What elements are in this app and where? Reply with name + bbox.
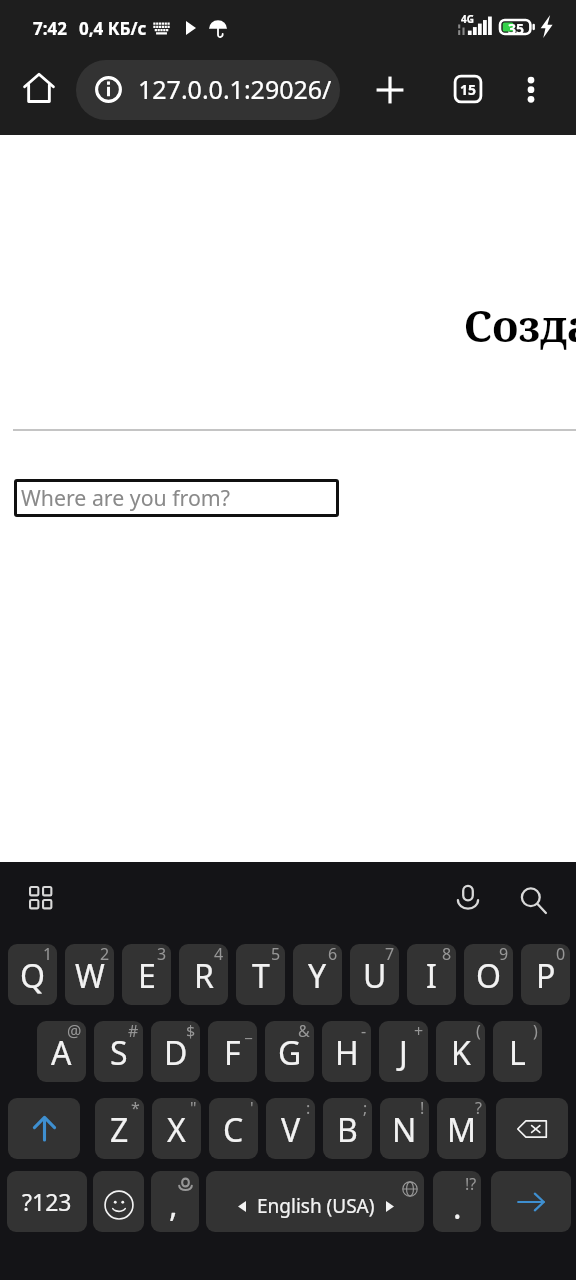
button[interactable]: V xyxy=(266,1098,315,1159)
staticText: 3 xyxy=(157,944,167,965)
button[interactable]: S xyxy=(94,1021,143,1082)
staticText: 4 xyxy=(214,944,224,965)
button[interactable]: Shift xyxy=(8,1098,80,1159)
staticText: O xyxy=(476,954,501,998)
staticText: F xyxy=(224,1031,241,1075)
staticText: E xyxy=(138,954,156,998)
button[interactable]: P xyxy=(521,944,570,1005)
staticText: A xyxy=(51,1031,72,1075)
staticText: ? xyxy=(475,1098,482,1119)
button[interactable]: Y xyxy=(293,944,342,1005)
button[interactable]: New tab xyxy=(362,62,418,118)
staticText: N xyxy=(392,1108,417,1152)
staticText: : xyxy=(306,1098,311,1119)
staticText: ! xyxy=(420,1098,425,1119)
staticText: + xyxy=(414,1021,424,1042)
staticText: V xyxy=(281,1108,301,1152)
button[interactable]: A xyxy=(37,1021,86,1082)
button[interactable]: , xyxy=(151,1171,199,1232)
staticText: 4G xyxy=(461,12,474,26)
staticText: S xyxy=(110,1031,128,1075)
button[interactable]: 127.0.0.1:29026/ xyxy=(76,60,340,120)
button[interactable]: Voice input xyxy=(444,875,492,923)
button[interactable]: English (USA) xyxy=(206,1171,424,1232)
staticText: P xyxy=(536,954,556,998)
staticText: & xyxy=(298,1021,310,1042)
staticText: 5 xyxy=(271,944,281,965)
button[interactable]: Z xyxy=(95,1098,144,1159)
button[interactable]: K xyxy=(436,1021,485,1082)
staticText: !? xyxy=(465,1173,477,1195)
staticText: Y xyxy=(308,954,327,998)
button[interactable]: Backspace xyxy=(496,1098,568,1159)
staticText: 7 xyxy=(385,944,395,965)
staticText: X xyxy=(167,1108,186,1152)
staticText: C xyxy=(223,1108,244,1152)
staticText: English (USA) xyxy=(257,1193,375,1219)
staticText: _ xyxy=(245,1021,253,1042)
button[interactable]: B xyxy=(323,1098,372,1159)
button[interactable]: N xyxy=(380,1098,429,1159)
button[interactable]: F xyxy=(208,1021,257,1082)
button[interactable]: L xyxy=(493,1021,542,1082)
staticText: B xyxy=(337,1108,358,1152)
button[interactable]: W xyxy=(65,944,114,1005)
button[interactable]: R xyxy=(179,944,228,1005)
staticText: - xyxy=(361,1021,367,1042)
button[interactable]: D xyxy=(151,1021,200,1082)
button[interactable]: Enter xyxy=(491,1171,571,1232)
staticText: 127.0.0.1:29026/ xyxy=(138,72,332,106)
button[interactable]: More options xyxy=(503,62,559,118)
button[interactable]: I xyxy=(407,944,456,1005)
staticText: K xyxy=(451,1031,471,1075)
staticText: 0,4 КБ/с xyxy=(79,17,147,40)
staticText: Созда xyxy=(464,296,576,355)
button[interactable]: Home xyxy=(10,59,67,116)
button[interactable]: H xyxy=(322,1021,371,1082)
button[interactable]: M xyxy=(437,1098,486,1159)
staticText: " xyxy=(190,1098,197,1119)
staticText: 9 xyxy=(499,944,509,965)
button[interactable]: O xyxy=(464,944,513,1005)
button[interactable]: X xyxy=(152,1098,201,1159)
staticText: ' xyxy=(250,1098,254,1119)
staticText: L xyxy=(509,1031,526,1075)
button[interactable]: Emoji xyxy=(93,1171,144,1232)
staticText: 1 xyxy=(43,944,53,965)
button[interactable]: C xyxy=(209,1098,258,1159)
staticText: 0 xyxy=(556,944,566,965)
button[interactable]: Tabs xyxy=(440,61,496,117)
staticText: U xyxy=(363,954,387,998)
staticText: 2 xyxy=(100,944,110,965)
staticText: H xyxy=(335,1031,359,1075)
staticText: . xyxy=(453,1185,462,1229)
staticText: R xyxy=(194,954,214,998)
staticText: 35 xyxy=(508,19,525,35)
staticText: 8 xyxy=(442,944,452,965)
button[interactable]: T xyxy=(236,944,285,1005)
staticText: 15 xyxy=(460,80,477,99)
button[interactable]: Search xyxy=(509,876,557,924)
button[interactable]: . xyxy=(433,1171,481,1232)
button[interactable]: E xyxy=(122,944,171,1005)
button[interactable]: Keyboard layouts xyxy=(17,874,65,922)
staticText: , xyxy=(169,1183,178,1227)
staticText: G xyxy=(278,1031,302,1075)
staticText: $ xyxy=(186,1021,196,1042)
staticText: W xyxy=(75,954,105,998)
staticText: T xyxy=(252,954,270,998)
staticText: @ xyxy=(67,1021,82,1042)
button[interactable]: ?123 xyxy=(7,1171,87,1232)
staticText: ; xyxy=(363,1098,368,1119)
staticText: ( xyxy=(476,1021,481,1042)
staticText: J xyxy=(399,1031,408,1075)
button[interactable]: G xyxy=(265,1021,314,1082)
button[interactable]: J xyxy=(379,1021,428,1082)
staticText: D xyxy=(164,1031,188,1075)
staticText: M xyxy=(447,1108,477,1152)
staticText: # xyxy=(128,1021,139,1042)
button[interactable]: Where are you from? xyxy=(14,479,339,517)
button[interactable]: U xyxy=(350,944,399,1005)
staticText: * xyxy=(131,1098,140,1119)
button[interactable]: Q xyxy=(8,944,57,1005)
